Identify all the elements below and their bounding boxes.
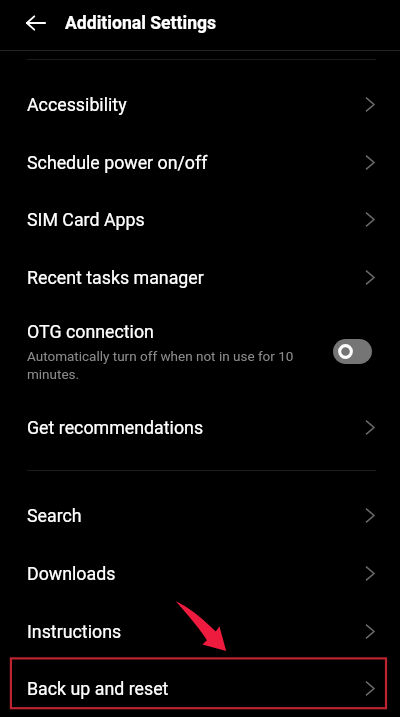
staticText: Instructions — [27, 621, 122, 642]
staticText: Get recommendations — [27, 417, 204, 438]
button[interactable]: Accessibility — [0, 76, 400, 134]
button[interactable]: Search — [0, 481, 400, 539]
staticText: Downloads — [27, 563, 116, 584]
button[interactable]: Back up and reset — [0, 655, 400, 713]
staticText: SIM Card Apps — [27, 209, 145, 230]
button[interactable]: Recent tasks manager — [0, 250, 400, 308]
staticText: Accessibility — [27, 94, 127, 115]
button[interactable]: OTG connection — [0, 308, 400, 384]
staticText: Back up and reset — [27, 678, 169, 699]
staticText: Recent tasks manager — [27, 267, 204, 288]
staticText: Schedule power on/off — [27, 152, 208, 173]
button[interactable]: Downloads — [0, 539, 400, 597]
button[interactable]: Schedule power on/off — [0, 134, 400, 192]
button[interactable]: Get recommendations — [0, 384, 400, 442]
button[interactable]: SIM Card Apps — [0, 192, 400, 250]
staticText: OTG connection — [27, 321, 154, 342]
staticText: Search — [27, 505, 82, 526]
staticText: Additional Settings — [65, 13, 217, 34]
staticText: Automatically turn off when not in use f… — [27, 348, 319, 382]
button[interactable]: Back — [15, 2, 56, 43]
button[interactable]: Instructions — [0, 597, 400, 655]
button[interactable]: OTG connection, off — [333, 339, 372, 364]
